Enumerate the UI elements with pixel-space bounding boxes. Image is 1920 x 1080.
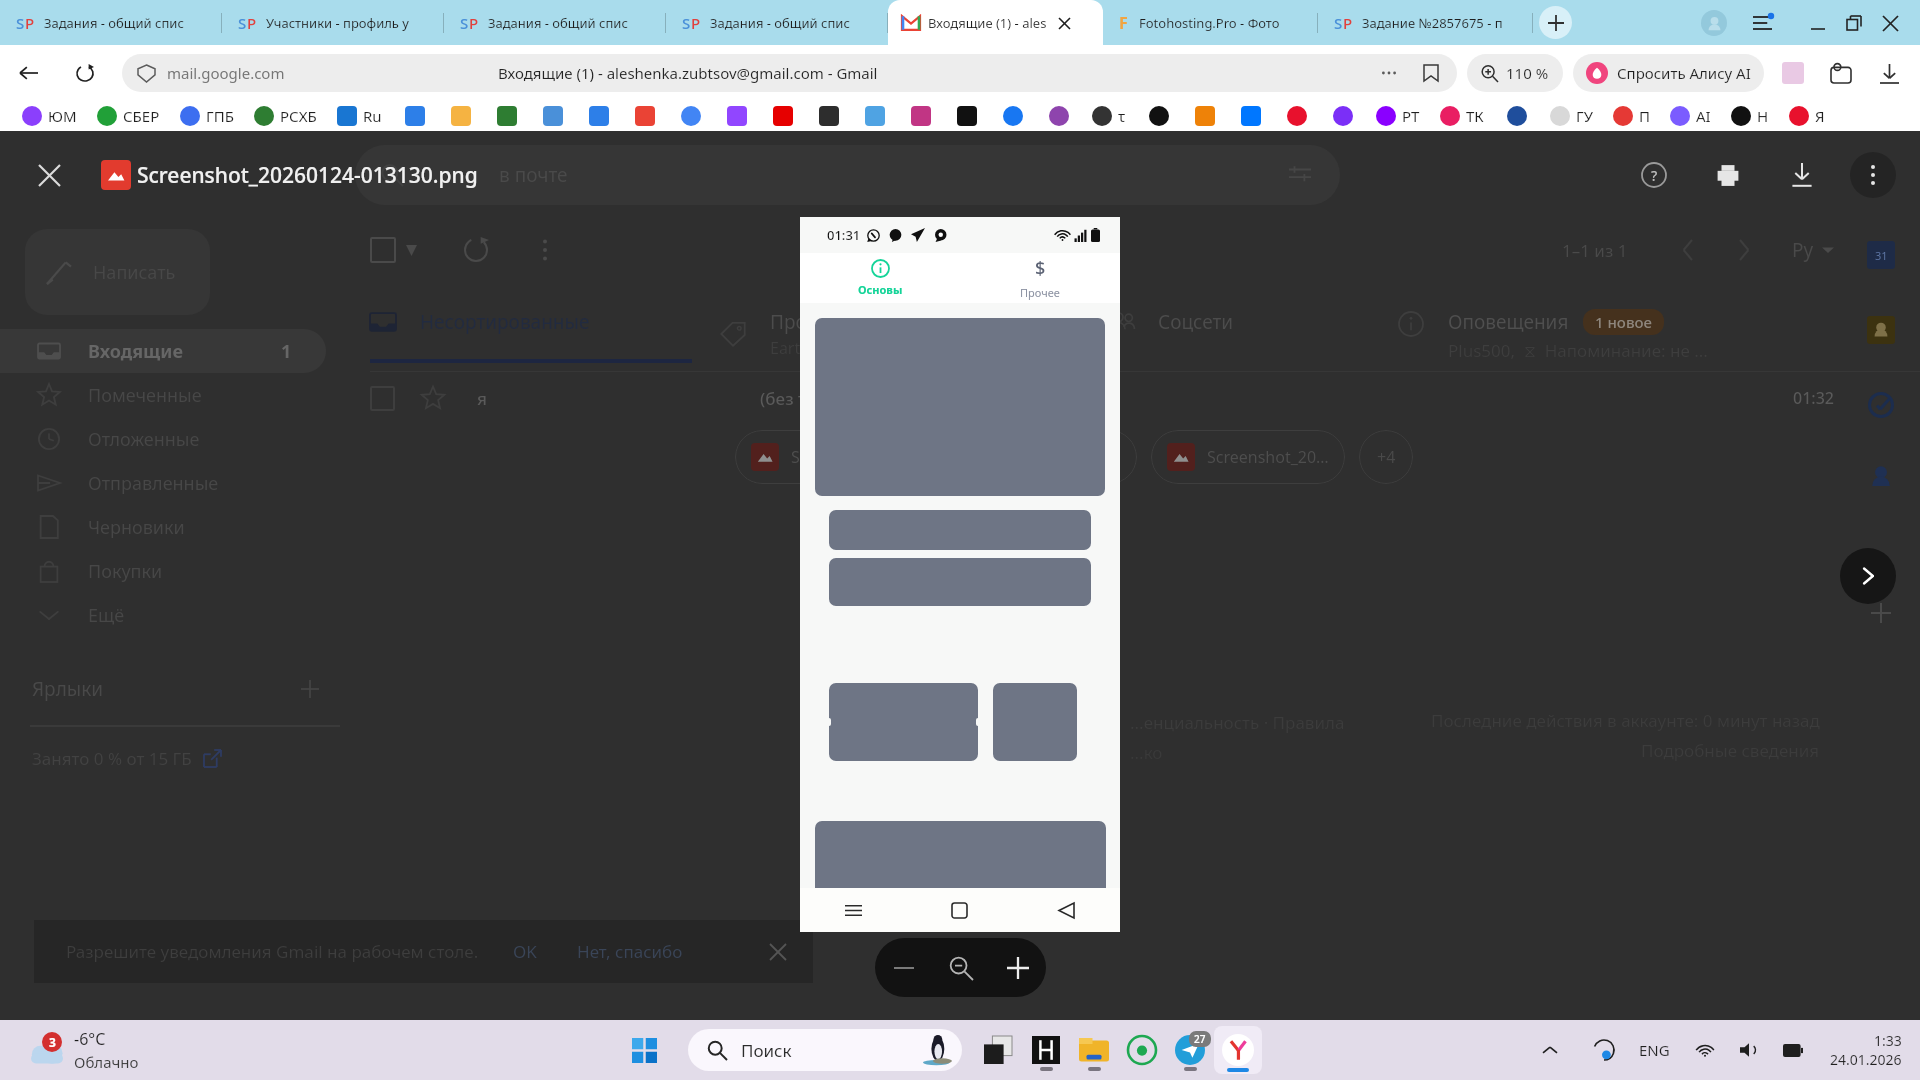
button[interactable] xyxy=(1274,106,1320,126)
button[interactable]: РСХБ xyxy=(244,106,327,126)
button[interactable]: Volume xyxy=(1734,1035,1764,1065)
button[interactable] xyxy=(806,106,852,126)
button[interactable]: Bookmark xyxy=(1417,59,1445,87)
button[interactable]: Task view xyxy=(974,1026,1022,1074)
button[interactable] xyxy=(714,106,760,126)
button[interactable] xyxy=(392,106,438,126)
button[interactable]: τ xyxy=(1082,106,1136,126)
button[interactable] xyxy=(576,106,622,126)
button[interactable] xyxy=(990,106,1036,126)
button[interactable] xyxy=(1494,106,1540,126)
button[interactable]: Contacts xyxy=(1867,316,1895,344)
button[interactable] xyxy=(1320,106,1366,126)
button[interactable]: Battery xyxy=(1778,1035,1808,1065)
button[interactable]: Dismiss xyxy=(763,937,793,967)
button[interactable] xyxy=(993,683,1077,761)
button[interactable]: Черновики xyxy=(0,505,326,549)
button[interactable]: Help xyxy=(1634,155,1674,195)
button[interactable] xyxy=(815,821,1106,889)
button[interactable]: Profile xyxy=(1694,3,1734,43)
button[interactable]: П xyxy=(1603,106,1660,126)
button[interactable]: More xyxy=(1375,59,1403,87)
button[interactable]: Show hidden icons xyxy=(1533,1033,1567,1067)
button[interactable]: More options xyxy=(1850,152,1896,198)
button[interactable]: Network xyxy=(1690,1035,1720,1065)
button[interactable] xyxy=(852,106,898,126)
button[interactable]: Add xyxy=(1867,599,1895,627)
button[interactable] xyxy=(760,106,806,126)
button[interactable]: Add label xyxy=(298,677,322,701)
button[interactable]: Zoom out xyxy=(875,938,932,997)
button[interactable]: Н xyxy=(1721,106,1779,126)
button[interactable]: Add person xyxy=(1867,463,1895,491)
button[interactable]: New tab xyxy=(1533,0,1578,45)
button[interactable]: Отложенные xyxy=(0,417,326,461)
button[interactable]: App xyxy=(1166,1026,1214,1074)
button[interactable]: $ xyxy=(960,253,1120,303)
button[interactable] xyxy=(530,106,576,126)
button[interactable]: S xyxy=(444,0,666,45)
button[interactable] xyxy=(1228,106,1274,126)
button[interactable] xyxy=(438,106,484,126)
button[interactable]: Print xyxy=(1708,155,1748,195)
button[interactable] xyxy=(668,106,714,126)
button[interactable]: СБЕР xyxy=(87,106,170,126)
button[interactable]: Входящие (1) - ales xyxy=(888,0,1103,45)
button[interactable]: Yandex Browser xyxy=(1214,1026,1262,1074)
button[interactable]: F xyxy=(1103,0,1318,45)
button[interactable] xyxy=(1136,106,1182,126)
button[interactable]: Close tab xyxy=(1053,12,1075,34)
button[interactable]: Screenshot_20… xyxy=(943,430,1137,484)
button[interactable]: Tasks xyxy=(1867,391,1895,419)
button[interactable]: Отправленные xyxy=(0,461,326,505)
button[interactable]: Close window xyxy=(1872,5,1908,41)
button[interactable]: Sync xyxy=(1587,1033,1621,1067)
button[interactable]: Fit xyxy=(932,938,989,997)
button[interactable]: mail.google.com xyxy=(122,54,1457,92)
button[interactable]: Back xyxy=(12,56,46,90)
button[interactable]: Recents xyxy=(800,888,906,932)
button[interactable]: Я xyxy=(1779,106,1835,126)
button[interactable]: App xyxy=(1118,1026,1166,1074)
button[interactable]: Minimize xyxy=(1800,5,1836,41)
button[interactable]: S xyxy=(1318,0,1533,45)
button[interactable]: Home xyxy=(906,888,1013,932)
button[interactable]: Download xyxy=(1782,155,1822,195)
button[interactable]: Zoom in xyxy=(989,938,1046,997)
button[interactable]: Downloads xyxy=(1872,56,1906,90)
button[interactable]: Спросить Алису AI xyxy=(1573,54,1764,92)
button[interactable]: Основы xyxy=(800,253,960,303)
button[interactable]: ГПБ xyxy=(170,106,244,126)
button[interactable] xyxy=(944,106,990,126)
button[interactable]: Search options xyxy=(1286,161,1314,189)
button[interactable]: Extensions xyxy=(1824,56,1858,90)
button[interactable] xyxy=(1182,106,1228,126)
button[interactable]: Поиск xyxy=(688,1029,962,1071)
button[interactable]: Screenshot_20… xyxy=(1151,430,1345,484)
button[interactable] xyxy=(898,106,944,126)
button[interactable]: ГУ xyxy=(1540,106,1603,126)
button[interactable]: Reload xyxy=(68,56,102,90)
button[interactable]: 3 xyxy=(26,1028,139,1072)
button[interactable]: Start xyxy=(620,1026,668,1074)
button[interactable]: Входящие xyxy=(0,329,326,373)
button[interactable]: Screenshot xyxy=(1776,56,1810,90)
button[interactable]: Back xyxy=(1013,888,1120,932)
button[interactable]: S xyxy=(0,0,222,45)
button[interactable]: App xyxy=(1070,1026,1118,1074)
button[interactable]: S xyxy=(222,0,444,45)
button[interactable] xyxy=(829,510,1091,550)
button[interactable] xyxy=(622,106,668,126)
button[interactable]: Ru xyxy=(327,106,392,126)
button[interactable] xyxy=(829,683,978,761)
button[interactable]: Close xyxy=(30,156,68,194)
button[interactable]: App xyxy=(1022,1026,1070,1074)
button[interactable]: Разрешите уведомления Gmail на рабочем с… xyxy=(34,920,813,983)
button[interactable]: AI xyxy=(1660,106,1721,126)
button[interactable]: 110 % xyxy=(1467,54,1563,92)
button[interactable]: РТ xyxy=(1366,106,1430,126)
button[interactable]: Next image xyxy=(1840,548,1896,604)
button[interactable]: Menu xyxy=(1742,3,1782,43)
